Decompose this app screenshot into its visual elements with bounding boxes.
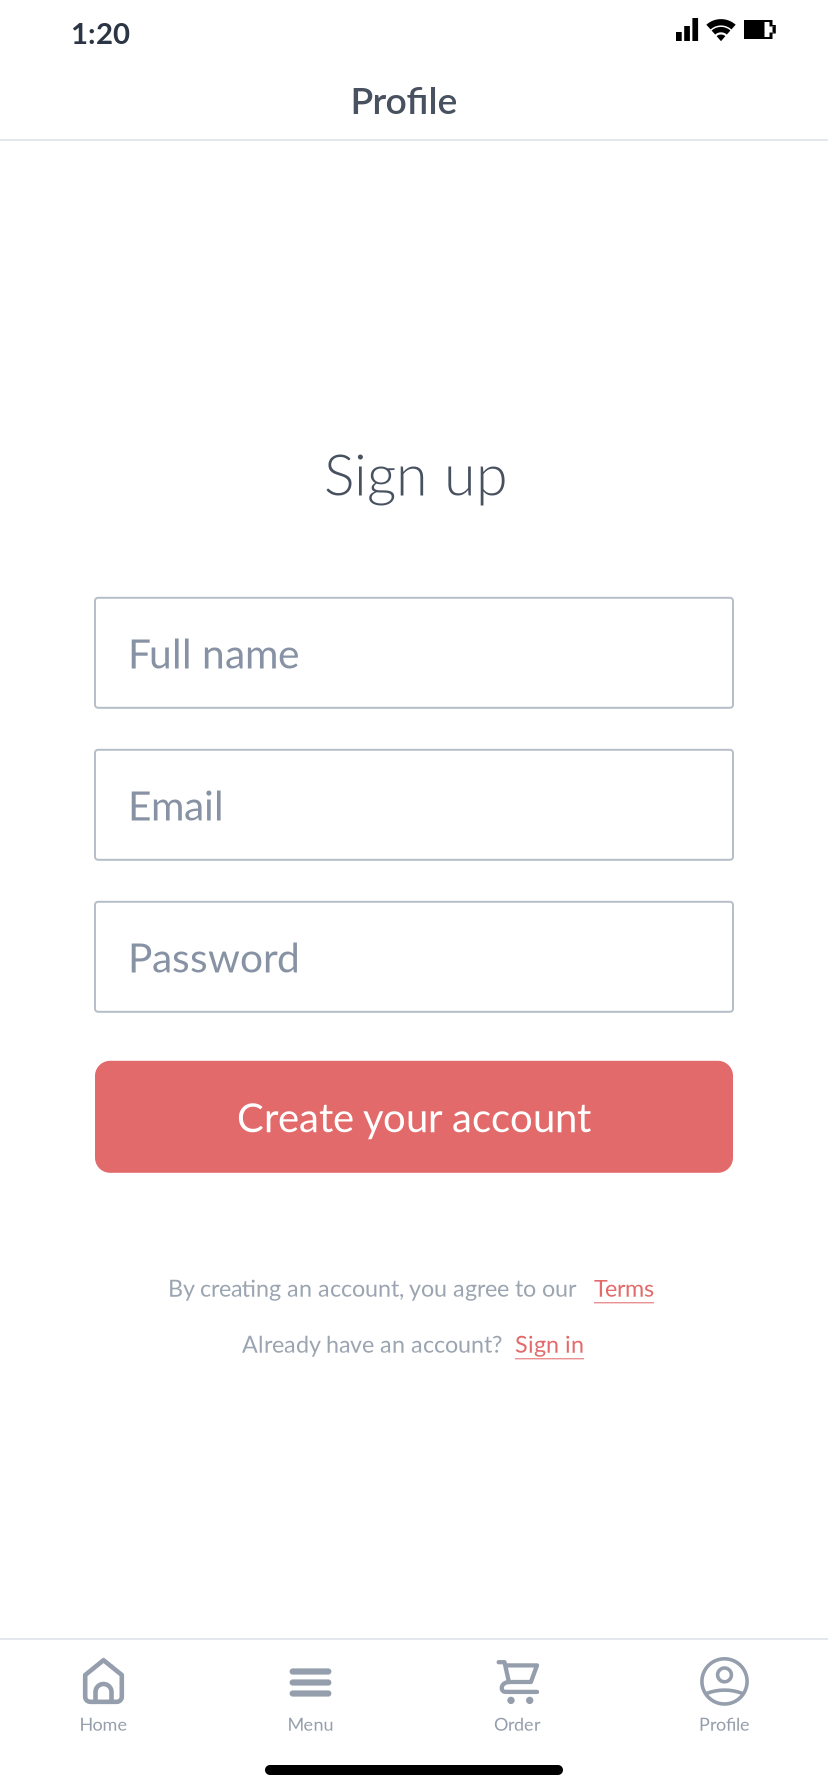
button[interactable]: Password [95,902,733,1012]
staticText: Password [128,932,300,981]
button[interactable]: Full name [95,598,733,708]
staticText: Profile [350,77,457,122]
button[interactable]: Profile [621,1638,828,1735]
staticText: Profile [699,1713,750,1735]
staticText: Full name [128,628,299,677]
button[interactable]: Email [95,750,733,860]
staticText: 1:20 [71,15,130,50]
staticText: Order [494,1713,541,1735]
button[interactable]: Order [414,1638,621,1735]
staticText: Email [128,780,224,829]
staticText: Menu [287,1713,333,1735]
staticText: Create your account [237,1093,591,1141]
staticText: Home [79,1713,127,1735]
button[interactable]: Home [0,1638,207,1735]
button[interactable]: Sign in [515,1330,584,1358]
button[interactable]: Create your account [95,1061,733,1173]
staticText: Terms [594,1274,654,1302]
staticText: Sign in [515,1330,584,1358]
staticText: By creating an account, you agree to our [168,1274,576,1302]
button[interactable]: Menu [207,1638,414,1735]
staticText: Already have an account? [242,1330,502,1358]
button[interactable]: Terms [594,1274,654,1302]
staticText: Sign up [324,439,508,508]
